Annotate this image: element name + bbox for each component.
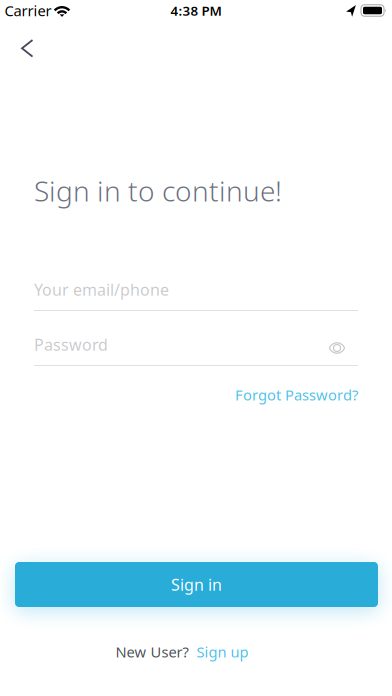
staticText: Sign in xyxy=(171,574,222,595)
staticText: New User? xyxy=(115,642,188,661)
button[interactable]: Sign in xyxy=(15,562,378,607)
staticText: Your email/phone xyxy=(34,279,169,300)
staticText: 4:38 PM xyxy=(170,2,221,19)
staticText: Carrier xyxy=(4,1,51,20)
button[interactable]: Sign up xyxy=(196,642,248,661)
button[interactable]: Forgot Password? xyxy=(235,385,358,404)
staticText: Password xyxy=(34,334,108,355)
staticText: Sign up xyxy=(196,642,248,661)
staticText: Forgot Password? xyxy=(235,385,358,404)
button[interactable]: Back xyxy=(0,0,52,68)
staticText: Sign in to continue! xyxy=(34,172,282,209)
button[interactable]: Show password xyxy=(329,342,345,354)
